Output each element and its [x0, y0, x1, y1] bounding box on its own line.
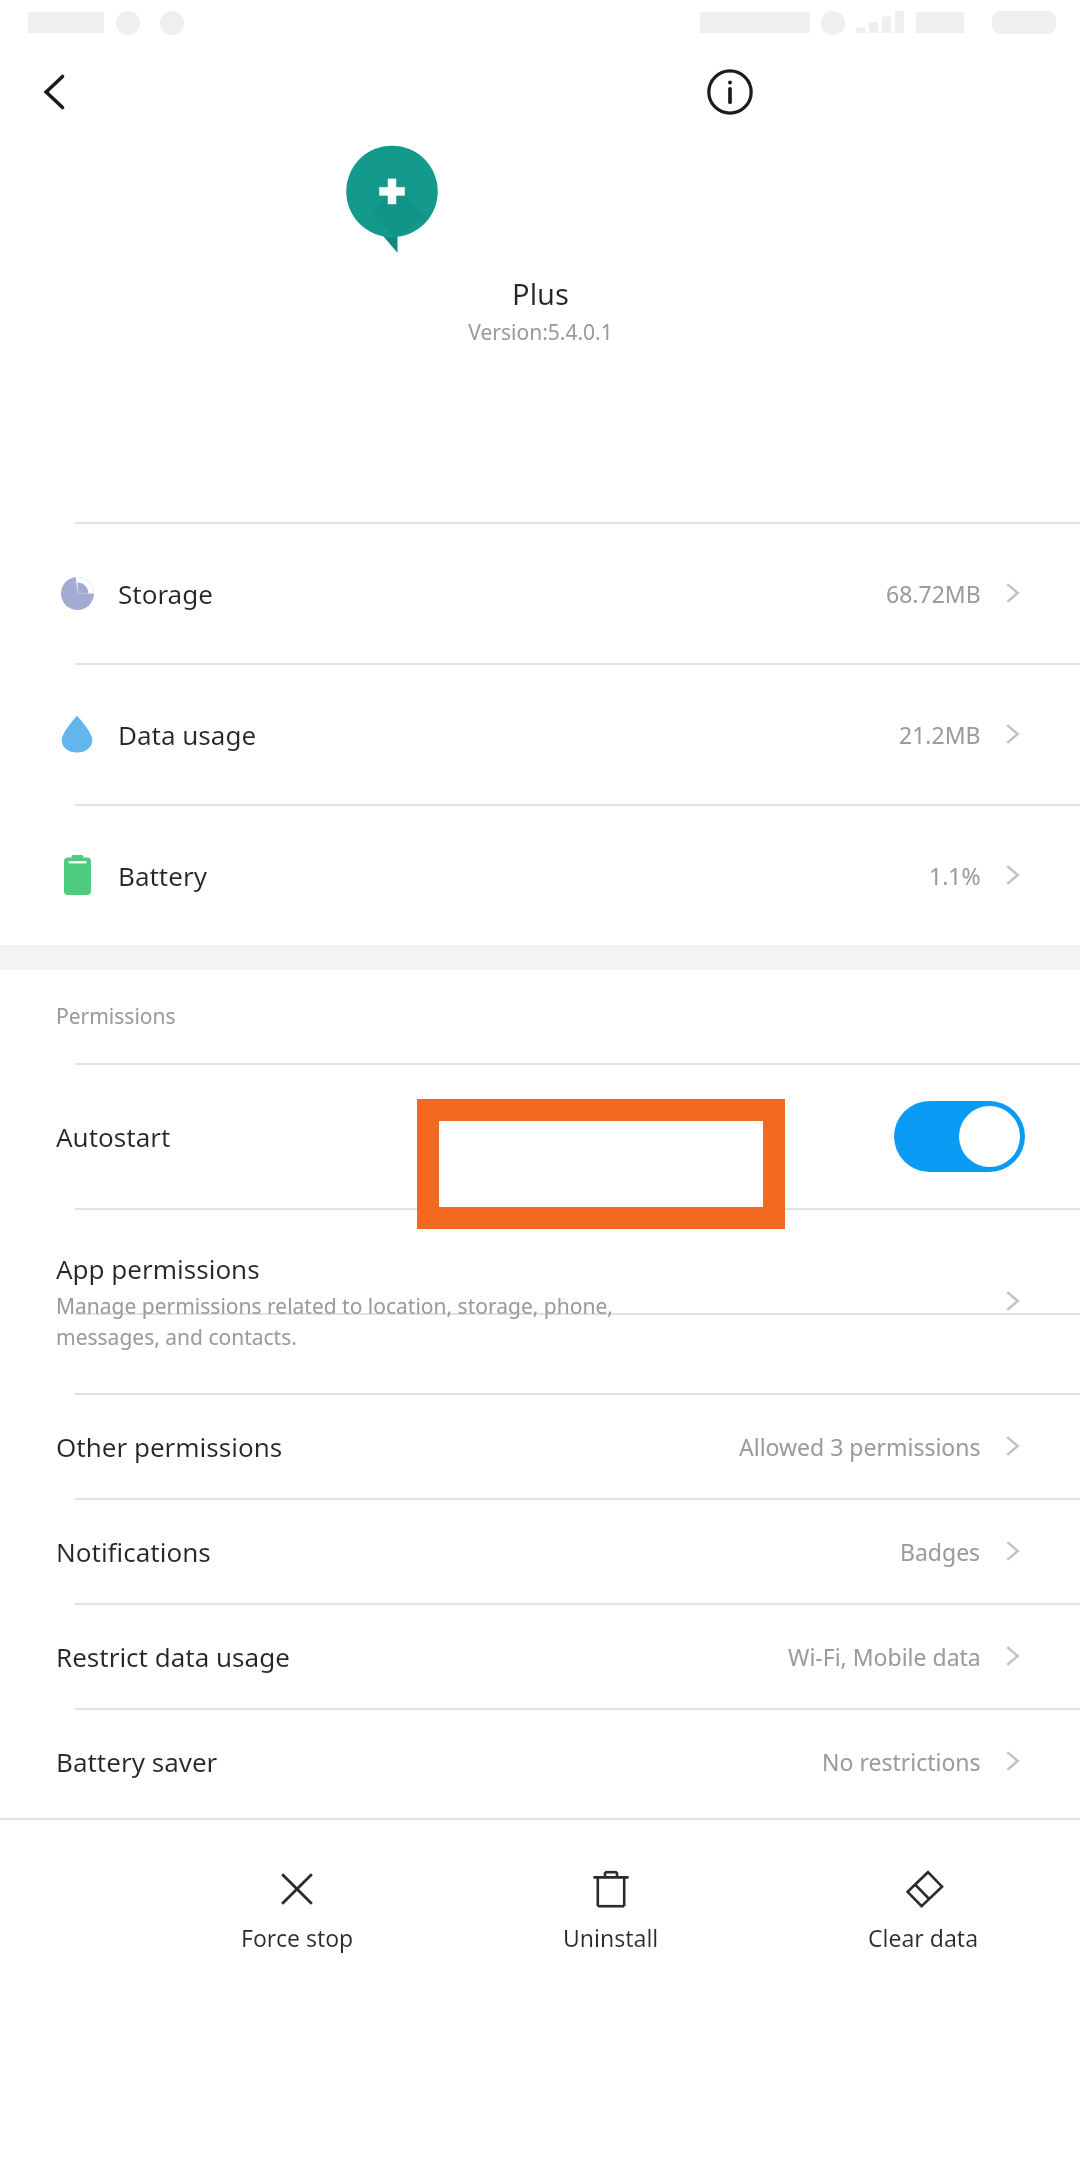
staticText: Battery saver [56, 1744, 218, 1779]
staticText: Storage [118, 576, 213, 611]
staticText: Uninstall [563, 1922, 659, 1953]
button[interactable]: Notifications [0, 1499, 1080, 1603]
staticText: Version:5.4.0.1 [468, 318, 613, 347]
staticText: Autostart [56, 1119, 171, 1154]
staticText: Other permissions [56, 1429, 283, 1464]
button[interactable]: Battery [0, 805, 1080, 945]
staticText: Force stop [241, 1922, 354, 1953]
staticText: 21.2MB [899, 719, 981, 750]
button[interactable]: Restrict data usage [0, 1604, 1080, 1708]
staticText: Manage permissions related to location, … [56, 1292, 613, 1351]
staticText: 68.72MB [886, 578, 981, 609]
button[interactable]: Back [15, 52, 95, 132]
staticText: Allowed 3 permissions [739, 1431, 981, 1462]
staticText: Notifications [56, 1534, 211, 1569]
button[interactable]: Data usage [0, 664, 1080, 804]
staticText: Permissions [56, 1002, 176, 1031]
staticText: Badges [900, 1536, 981, 1567]
staticText: Clear data [868, 1922, 979, 1953]
button[interactable]: Other permissions [0, 1394, 1080, 1498]
button[interactable]: Autostart [0, 1064, 1080, 1208]
button[interactable]: Battery saver [0, 1709, 1080, 1813]
button[interactable]: Uninstall [454, 1820, 767, 2000]
staticText: App permissions [56, 1251, 260, 1286]
staticText: Data usage [118, 717, 257, 752]
staticText: 1.1% [929, 860, 981, 891]
button[interactable]: Clear data [767, 1820, 1080, 2000]
staticText: Restrict data usage [56, 1639, 290, 1674]
staticText: Plus [512, 274, 569, 313]
button[interactable]: App info [690, 52, 770, 132]
staticText: No restrictions [822, 1746, 981, 1777]
staticText: Wi-Fi, Mobile data [788, 1641, 981, 1672]
button[interactable]: Force stop [140, 1820, 454, 2000]
button[interactable]: App permissions [0, 1209, 1080, 1393]
button[interactable]: Storage [0, 523, 1080, 663]
staticText: Battery [118, 858, 207, 893]
